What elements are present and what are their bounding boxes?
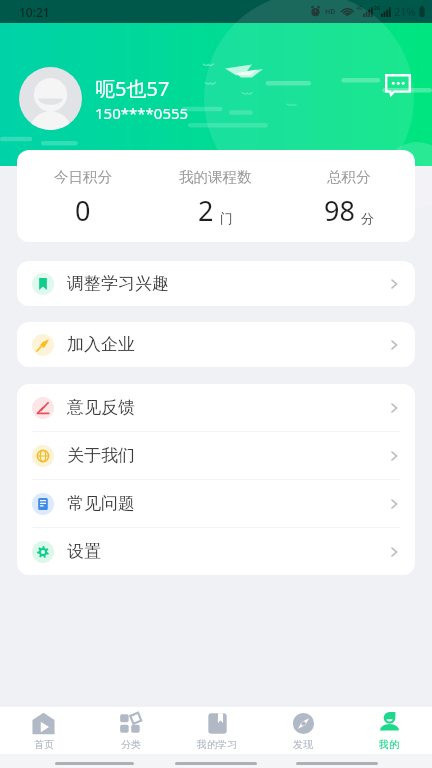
staticText: 呃5也57 xyxy=(95,75,170,102)
button[interactable]: Messages xyxy=(381,68,415,102)
staticText: 首页 xyxy=(34,738,54,751)
staticText: 常见问题 xyxy=(67,493,135,514)
button[interactable]: 发现 xyxy=(260,707,346,754)
staticText: 调整学习兴趣 xyxy=(67,273,169,294)
button[interactable]: 加入企业 xyxy=(17,322,415,367)
button[interactable]: 意见反馈 xyxy=(17,384,415,431)
staticText: 发现 xyxy=(293,738,313,751)
button[interactable]: 分类 xyxy=(87,707,174,754)
staticText: 10:21 xyxy=(19,4,50,20)
staticText: 我的学习 xyxy=(197,738,237,751)
staticText: 总积分 xyxy=(327,168,371,186)
staticText: 分 xyxy=(361,210,374,226)
staticText: 150****0555 xyxy=(95,103,189,123)
staticText: 2G xyxy=(374,5,381,12)
staticText: 98 xyxy=(324,192,355,229)
staticText: 我的 xyxy=(379,738,399,751)
staticText: 分类 xyxy=(121,738,141,751)
staticText: 2 xyxy=(198,192,214,229)
button[interactable]: 首页 xyxy=(0,707,87,754)
staticText: 意见反馈 xyxy=(67,397,135,418)
staticText: 21% xyxy=(394,4,416,19)
button[interactable]: 常见问题 xyxy=(17,480,415,527)
staticText: 我的课程数 xyxy=(179,168,252,186)
staticText: 4G xyxy=(356,5,363,12)
staticText: 设置 xyxy=(67,541,101,562)
button[interactable]: 我的学习 xyxy=(174,707,260,754)
staticText: HD xyxy=(325,7,336,17)
staticText: 加入企业 xyxy=(67,334,135,355)
button[interactable]: 设置 xyxy=(17,528,415,575)
button[interactable]: 关于我们 xyxy=(17,432,415,479)
staticText: 门 xyxy=(220,210,233,226)
button[interactable]: 我的 xyxy=(346,707,432,754)
button[interactable]: 调整学习兴趣 xyxy=(17,261,415,306)
staticText: 关于我们 xyxy=(67,445,135,466)
staticText: 今日积分 xyxy=(54,168,112,186)
staticText: 0 xyxy=(75,192,91,229)
